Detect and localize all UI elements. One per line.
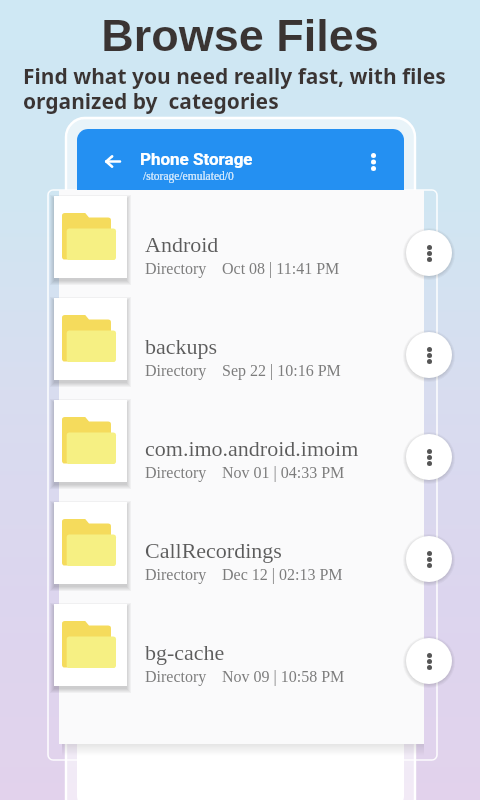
staticText: Phone Storage: [140, 149, 253, 169]
staticText: Find what you need really fast, with fil…: [23, 62, 446, 115]
staticText: Nov 01 | 04:33 PM: [222, 464, 345, 482]
button[interactable]: More options: [406, 536, 452, 582]
staticText: backups: [145, 334, 218, 358]
button[interactable]: [54, 400, 428, 492]
staticText: Oct 08 | 11:41 PM: [222, 260, 340, 278]
button[interactable]: [54, 298, 428, 390]
staticText: /storage/emulated/0: [143, 170, 234, 183]
staticText: Sep 22 | 10:16 PM: [222, 362, 341, 380]
staticText: CallRecordings: [145, 538, 282, 562]
staticText: Nov 09 | 10:58 PM: [222, 668, 345, 686]
staticText: Directory: [145, 668, 207, 686]
staticText: Browse Files: [0, 10, 480, 60]
button[interactable]: [54, 604, 428, 696]
staticText: Directory: [145, 260, 207, 278]
staticText: com.imo.android.imoim: [145, 436, 359, 460]
button[interactable]: [54, 502, 428, 594]
staticText: Directory: [145, 362, 207, 380]
button[interactable]: More options: [357, 146, 389, 178]
staticText: bg-cache: [145, 640, 225, 664]
staticText: Directory: [145, 464, 207, 482]
staticText: Android: [145, 232, 219, 256]
button[interactable]: Back: [98, 147, 126, 175]
staticText: Dec 12 | 02:13 PM: [222, 566, 343, 584]
button[interactable]: More options: [406, 638, 452, 684]
staticText: Directory: [145, 566, 207, 584]
button[interactable]: More options: [406, 332, 452, 378]
button[interactable]: [54, 196, 428, 288]
button[interactable]: More options: [406, 230, 452, 276]
button[interactable]: More options: [406, 434, 452, 480]
